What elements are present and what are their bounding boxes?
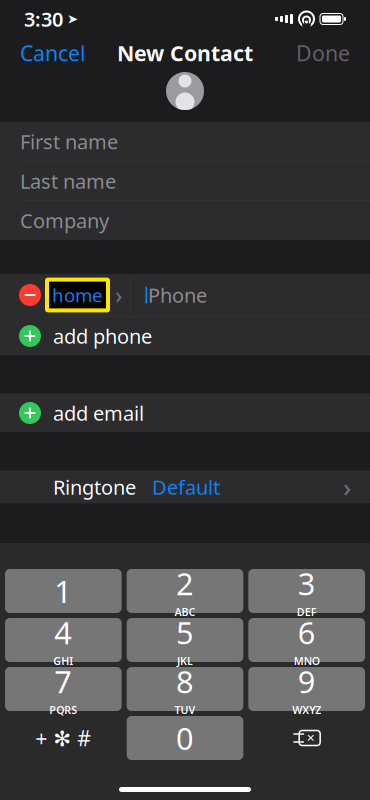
staticText: 9: [298, 661, 316, 702]
button[interactable]: 1: [5, 569, 122, 613]
staticText: New Contact: [117, 39, 253, 67]
button[interactable]: 9: [248, 667, 365, 711]
staticText: Company: [20, 207, 109, 234]
button[interactable]: 2: [127, 569, 243, 613]
button[interactable]: Done: [292, 33, 354, 73]
button[interactable]: Company: [0, 201, 370, 240]
staticText: ›: [115, 280, 122, 310]
button[interactable]: home: [0, 274, 370, 316]
staticText: WXYZ: [292, 703, 321, 717]
staticText: 3: [298, 563, 316, 604]
staticText: 8: [176, 661, 194, 702]
button[interactable]: 3: [248, 569, 365, 613]
button[interactable]: 0: [127, 716, 243, 760]
staticText: ✕: [306, 732, 315, 744]
button[interactable]: add email: [0, 393, 370, 432]
button[interactable]: add phone: [0, 316, 370, 355]
button[interactable]: Delete: [248, 716, 365, 760]
staticText: home: [52, 283, 103, 307]
staticText: Phone: [148, 282, 207, 308]
staticText: 2: [176, 563, 194, 604]
staticText: Default: [152, 474, 220, 500]
staticText: DEF: [297, 605, 317, 619]
staticText: 5: [176, 612, 194, 653]
staticText: add email: [53, 400, 144, 426]
staticText: First name: [20, 128, 118, 155]
button[interactable]: Last name: [0, 161, 370, 201]
staticText: Done: [296, 39, 350, 67]
button[interactable]: 7: [5, 667, 122, 711]
staticText: PQRS: [49, 703, 77, 717]
button[interactable]: 6: [248, 618, 365, 662]
staticText: ABC: [174, 605, 195, 619]
staticText: Ringtone: [53, 474, 136, 500]
staticText: GHI: [53, 654, 73, 668]
button[interactable]: Cancel: [16, 33, 90, 73]
button[interactable]: Ringtone: [0, 470, 370, 503]
staticText: TUV: [174, 703, 195, 717]
staticText: 4: [54, 612, 72, 653]
staticText: 0: [176, 718, 194, 758]
button[interactable]: Plus, star, pound: [5, 716, 122, 760]
staticText: 1: [54, 571, 72, 611]
staticText: ➤: [67, 11, 78, 26]
button[interactable]: 8: [127, 667, 243, 711]
staticText: MNO: [294, 654, 320, 668]
button[interactable]: First name: [0, 122, 370, 161]
staticText: 7: [54, 661, 72, 702]
staticText: Last name: [20, 168, 116, 194]
staticText: add phone: [53, 323, 152, 349]
staticText: ›: [343, 470, 351, 504]
staticText: JKL: [177, 654, 193, 668]
staticText: 6: [298, 612, 316, 653]
button[interactable]: 4: [5, 618, 122, 662]
staticText: + ✻ #: [35, 724, 91, 752]
button[interactable]: 5: [127, 618, 243, 662]
staticText: 3:30: [24, 6, 63, 32]
button[interactable]: Add photo: [166, 72, 204, 110]
staticText: Cancel: [20, 39, 86, 67]
